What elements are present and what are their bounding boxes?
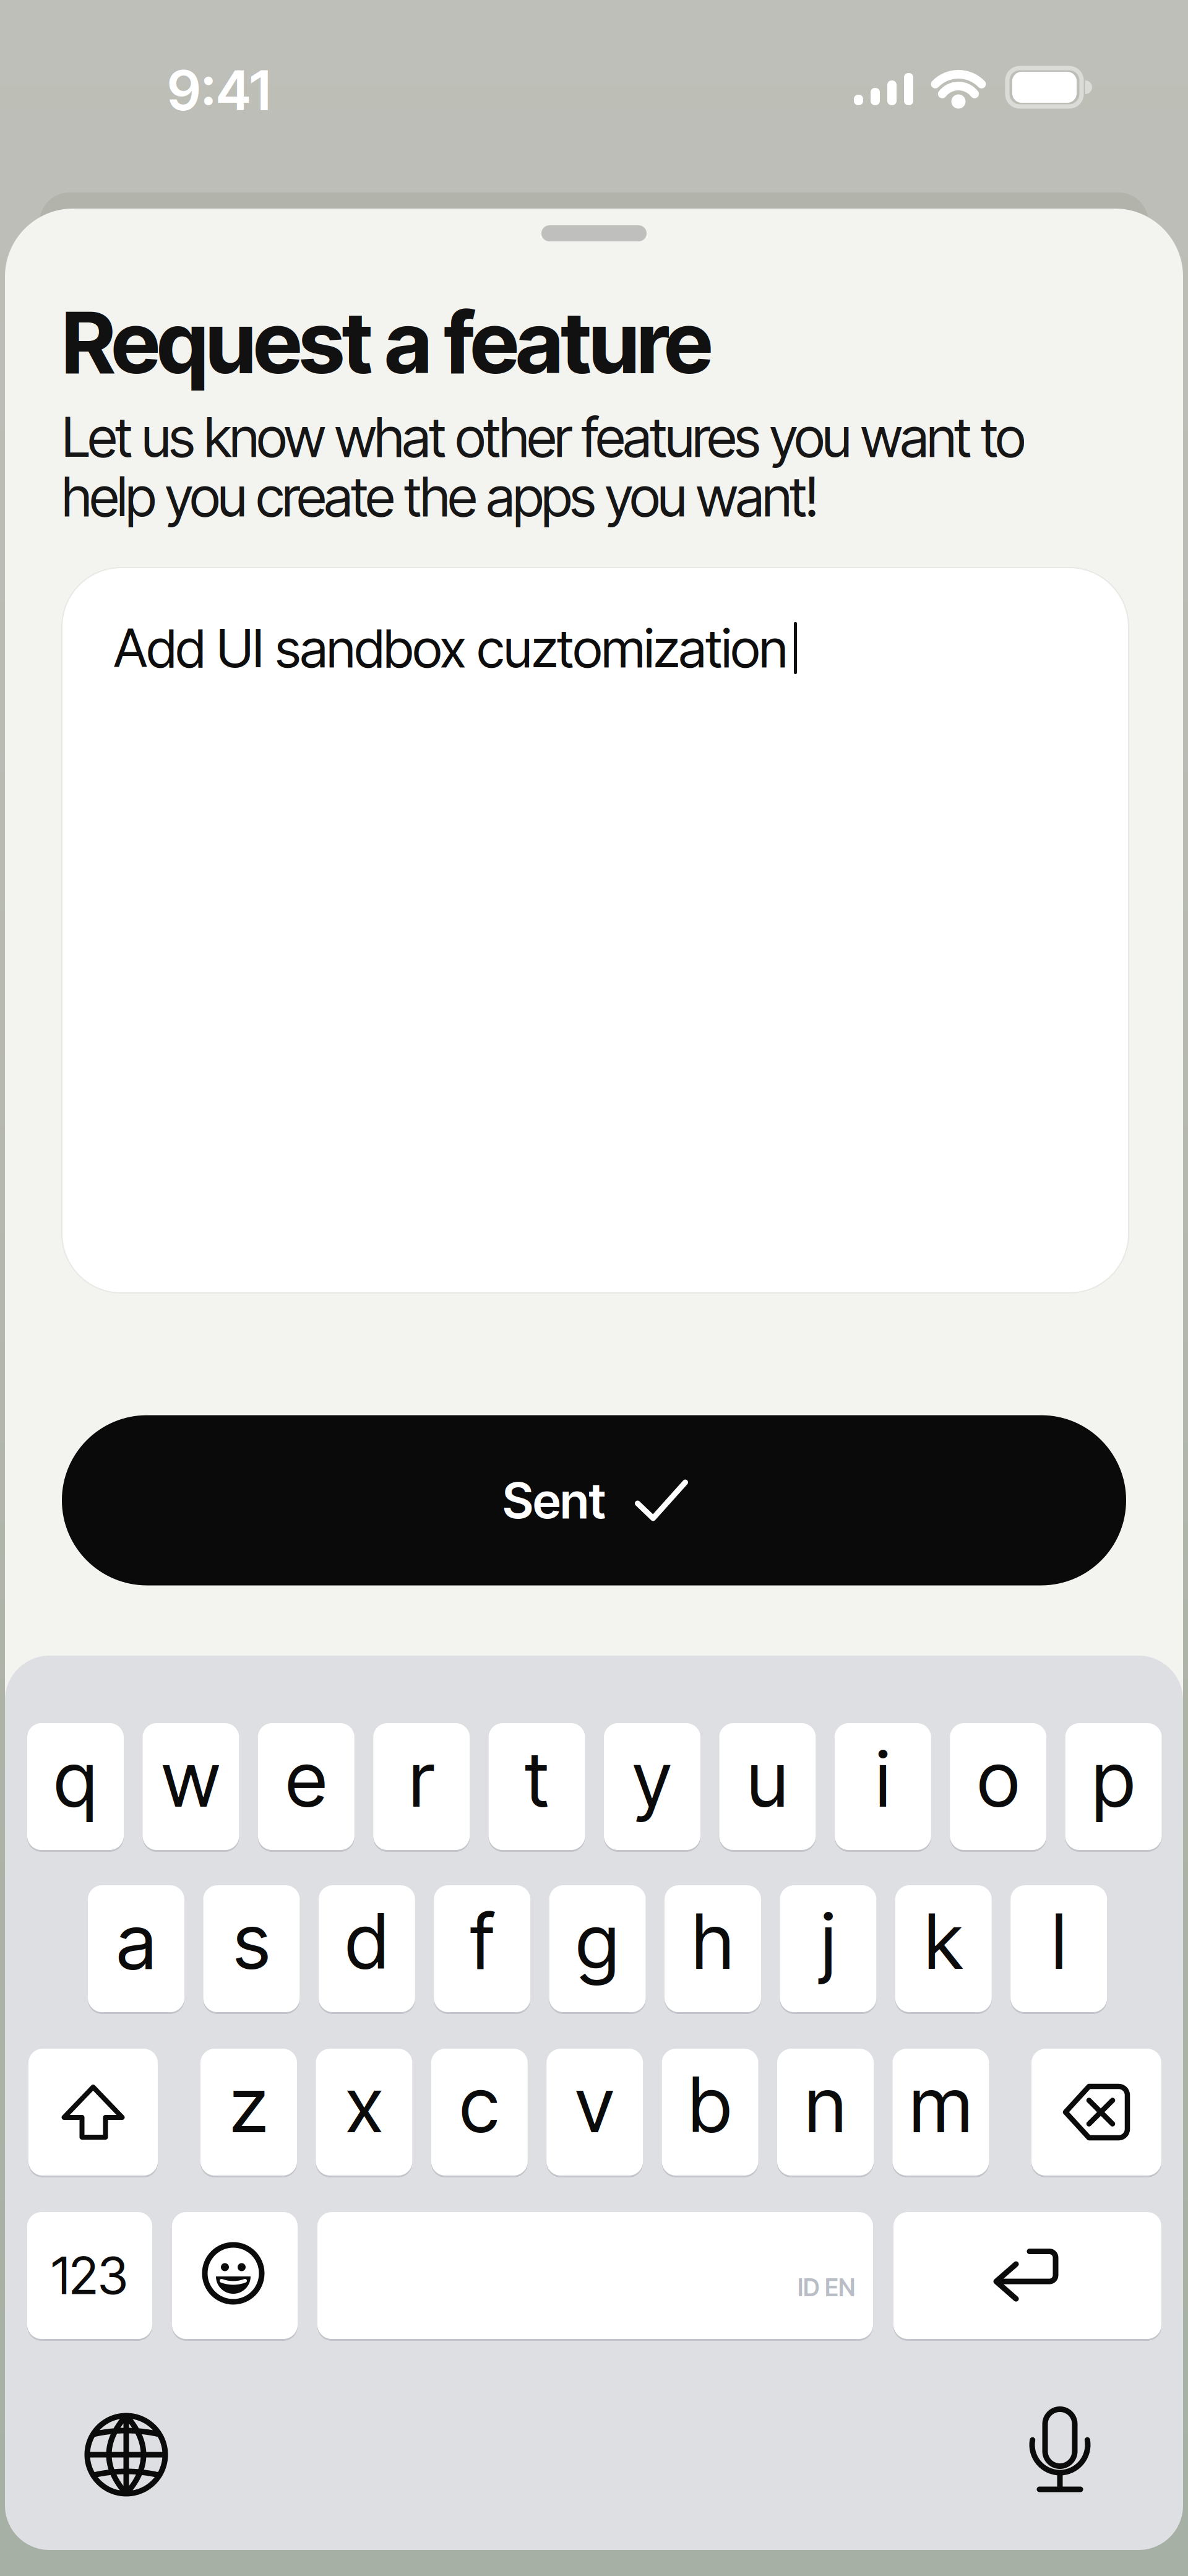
staticText: r (409, 1733, 434, 1825)
button[interactable]: Dictate (1026, 2408, 1094, 2500)
staticText: e (286, 1733, 326, 1825)
staticText: s (234, 1895, 269, 1987)
staticText: o (977, 1733, 1019, 1825)
staticText: h (692, 1895, 734, 1987)
staticText: Sent (503, 1470, 605, 1530)
staticText: d (345, 1895, 388, 1987)
button[interactable]: k (895, 1885, 992, 2012)
staticText: Add UI sandbox cuztomization (114, 616, 788, 680)
staticText: n (805, 2059, 846, 2151)
staticText: q (54, 1733, 97, 1825)
button[interactable]: f (434, 1885, 530, 2012)
button[interactable]: v (546, 2049, 643, 2176)
staticText: f (470, 1895, 494, 1987)
staticText: t (525, 1733, 549, 1825)
staticText: i (876, 1733, 890, 1825)
button[interactable]: x (316, 2049, 412, 2176)
button[interactable]: h (665, 1885, 761, 2012)
staticText: z (230, 2059, 268, 2151)
button[interactable]: Return (893, 2212, 1161, 2339)
staticText: w (162, 1733, 220, 1825)
staticText: 123 (51, 2245, 128, 2306)
staticText: l (1052, 1895, 1066, 1987)
button[interactable]: a (88, 1885, 184, 2012)
staticText: Request a feature (62, 291, 712, 394)
button[interactable]: m (892, 2049, 989, 2176)
button[interactable]: Feature request text (62, 568, 1129, 1293)
button[interactable]: Emoji (172, 2212, 298, 2339)
staticText: help you create the apps you want! (62, 463, 819, 529)
button[interactable]: z (200, 2049, 297, 2176)
button[interactable]: Sent (62, 1415, 1126, 1585)
button[interactable]: Shift (28, 2049, 158, 2176)
staticText: k (925, 1895, 962, 1987)
button[interactable]: s (203, 1885, 300, 2012)
button[interactable]: e (258, 1723, 354, 1850)
staticText: ID EN (798, 2273, 855, 2302)
staticText: v (575, 2059, 614, 2151)
button[interactable]: o (950, 1723, 1046, 1850)
staticText: y (633, 1733, 672, 1825)
staticText: j (821, 1895, 835, 1987)
button[interactable]: w (143, 1723, 239, 1850)
staticText: x (346, 2059, 383, 2151)
staticText: p (1092, 1733, 1135, 1825)
button[interactable]: l (1011, 1885, 1107, 2012)
button[interactable]: i (835, 1723, 931, 1850)
button[interactable]: b (662, 2049, 758, 2176)
button[interactable]: Delete (1031, 2049, 1161, 2176)
button[interactable]: j (780, 1885, 876, 2012)
button[interactable]: 123 (27, 2212, 152, 2339)
button[interactable]: q (27, 1723, 124, 1850)
button[interactable]: c (431, 2049, 528, 2176)
button[interactable]: p (1065, 1723, 1162, 1850)
staticText: 9:41 (167, 57, 271, 123)
staticText: u (747, 1733, 788, 1825)
button[interactable]: n (777, 2049, 874, 2176)
button[interactable]: g (549, 1885, 646, 2012)
button[interactable]: u (719, 1723, 816, 1850)
button[interactable]: Next keyboard (83, 2411, 170, 2498)
button[interactable]: y (604, 1723, 700, 1850)
staticText: c (460, 2059, 499, 2151)
staticText: m (910, 2059, 972, 2151)
button[interactable]: t (489, 1723, 585, 1850)
button[interactable]: Space (317, 2212, 873, 2339)
staticText: b (689, 2059, 731, 2151)
staticText: Let us know what other features you want… (62, 404, 1025, 470)
button[interactable]: r (373, 1723, 470, 1850)
button[interactable]: d (319, 1885, 415, 2012)
staticText: g (576, 1895, 619, 1987)
staticText: a (117, 1895, 156, 1987)
